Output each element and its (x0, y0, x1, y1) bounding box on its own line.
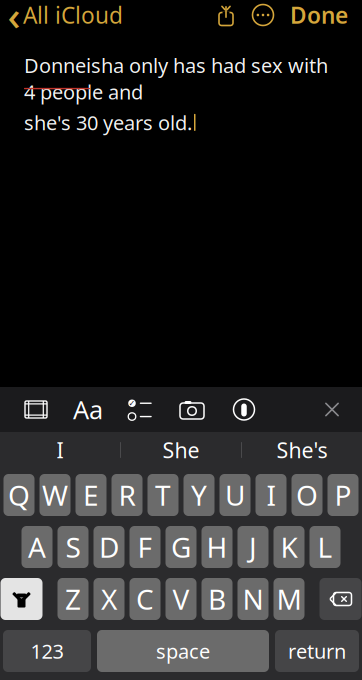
staticText: return (288, 638, 346, 664)
button[interactable]: Z (57, 578, 88, 620)
staticText: she's 30 years old. (24, 109, 192, 136)
button[interactable]: I (255, 474, 286, 516)
button[interactable]: V (165, 578, 196, 620)
button[interactable]: D (93, 526, 124, 568)
button[interactable]: return (275, 630, 359, 672)
staticText: D (99, 528, 119, 566)
button[interactable]: M (273, 578, 304, 620)
button[interactable]: X (93, 578, 124, 620)
button[interactable]: L (309, 526, 340, 568)
button[interactable]: Insert table (10, 387, 62, 431)
staticText: R (118, 476, 135, 514)
button[interactable]: Done (282, 0, 356, 34)
button[interactable]: J (237, 526, 268, 568)
staticText: ✓ (128, 399, 135, 408)
staticText: Q (8, 476, 30, 514)
staticText: M (276, 580, 301, 618)
staticText: L (317, 528, 332, 566)
staticText: space (156, 638, 210, 664)
button[interactable]: Text formatting (62, 387, 114, 431)
staticText: I (56, 436, 63, 464)
staticText: K (280, 528, 297, 566)
staticText: She's (276, 436, 327, 464)
button[interactable]: N (237, 578, 268, 620)
button[interactable]: S (57, 526, 88, 568)
button[interactable]: Q (3, 474, 34, 516)
staticText: All iCloud (23, 0, 123, 30)
button[interactable]: Shift (0, 578, 42, 620)
staticText: She (162, 436, 199, 464)
staticText: P (334, 476, 351, 514)
staticText: U (225, 476, 245, 514)
button[interactable]: T (147, 474, 178, 516)
button[interactable]: space (97, 630, 269, 672)
button[interactable]: C (129, 578, 160, 620)
button[interactable]: Markup (218, 387, 270, 431)
staticText: Done (290, 0, 348, 30)
button[interactable]: P (327, 474, 358, 516)
button[interactable]: Checklist (114, 387, 166, 431)
button[interactable]: H (201, 526, 232, 568)
staticText: ‹ (7, 0, 20, 41)
staticText: T (155, 476, 171, 514)
button[interactable]: 123 (3, 630, 91, 672)
button[interactable]: Camera (166, 387, 218, 431)
staticText: Y (191, 476, 207, 514)
staticText: I (266, 476, 275, 514)
button[interactable]: O (291, 474, 322, 516)
button[interactable]: Y (183, 474, 214, 516)
button[interactable]: More (244, 1, 282, 29)
staticText: X (101, 580, 117, 618)
button[interactable]: She's (242, 432, 362, 468)
staticText: H (206, 528, 227, 566)
button[interactable]: G (165, 526, 196, 568)
button[interactable]: I (0, 432, 120, 468)
staticText: W (42, 476, 68, 514)
staticText: Z (65, 580, 81, 618)
button[interactable]: W (39, 474, 70, 516)
staticText: V (172, 580, 189, 618)
button[interactable]: Share (208, 1, 244, 29)
staticText: N (242, 580, 263, 618)
button[interactable]: She (121, 432, 241, 468)
button[interactable]: E (75, 474, 106, 516)
staticText: E (83, 476, 99, 514)
staticText: Aa (73, 393, 103, 426)
staticText: F (137, 528, 152, 566)
staticText: G (171, 528, 191, 566)
staticText: C (136, 580, 154, 618)
button[interactable]: Hide keyboard (310, 387, 354, 431)
button[interactable]: K (273, 526, 304, 568)
button[interactable]: B (201, 578, 232, 620)
staticText: O (296, 476, 318, 514)
button[interactable]: Delete (319, 578, 361, 620)
button[interactable]: U (219, 474, 250, 516)
button[interactable]: ‹ (0, 0, 123, 34)
staticText: 123 (30, 638, 63, 664)
button[interactable]: A (21, 526, 52, 568)
staticText: A (28, 528, 46, 566)
staticText: J (249, 528, 257, 566)
button[interactable]: F (129, 526, 160, 568)
staticText: Donneisha only has had sex with 4 people… (24, 52, 328, 105)
staticText: B (208, 580, 226, 618)
button[interactable]: R (111, 474, 142, 516)
staticText: S (65, 528, 80, 566)
